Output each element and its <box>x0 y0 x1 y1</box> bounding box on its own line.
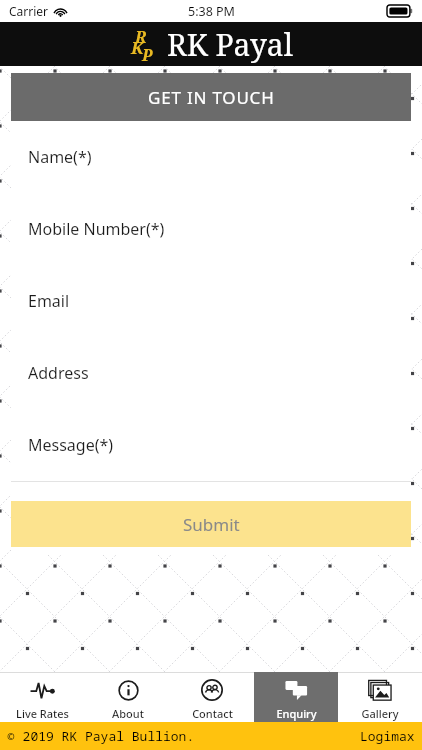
button[interactable]: Mobile Number(*) <box>11 193 411 265</box>
button[interactable]: Enquiry <box>254 672 338 722</box>
button[interactable]: Contact <box>170 672 254 722</box>
staticText: Carrier <box>9 3 49 19</box>
staticText: Message(*) <box>28 434 114 456</box>
staticText: About <box>112 706 144 721</box>
button[interactable]: Live Rates <box>0 672 85 722</box>
staticText: Enquiry <box>276 706 317 721</box>
staticText: Name(*) <box>28 146 92 168</box>
other: Gallery <box>368 680 392 701</box>
button[interactable]: Gallery <box>338 672 422 722</box>
staticText: R <box>135 26 147 48</box>
button[interactable]: About <box>85 672 170 722</box>
button[interactable]: GET IN TOUCH <box>11 73 411 121</box>
staticText: Logimax <box>360 727 415 745</box>
staticText: Contact <box>192 706 233 721</box>
staticText: 5:38 PM <box>188 3 235 20</box>
button[interactable]: Address <box>11 337 411 409</box>
staticText: Submit <box>183 513 240 536</box>
other: Live Rates <box>30 680 56 700</box>
button[interactable]: Message(*) <box>11 409 411 481</box>
staticText: K <box>131 36 144 59</box>
button[interactable]: Name(*) <box>11 121 411 193</box>
staticText: Address <box>28 362 89 384</box>
staticText: Mobile Number(*) <box>28 218 165 240</box>
staticText: GET IN TOUCH <box>148 86 275 109</box>
staticText: RK Payal <box>167 24 294 65</box>
other: About <box>118 680 139 701</box>
other: Enquiry <box>285 680 308 700</box>
staticText: P <box>142 44 153 66</box>
button[interactable]: Email <box>11 265 411 337</box>
staticText: Email <box>28 290 70 312</box>
staticText: © 2019 RK Payal Bullion. <box>7 727 195 745</box>
other: Contact <box>201 679 223 701</box>
staticText: Live Rates <box>16 706 69 721</box>
staticText: Gallery <box>361 706 399 721</box>
button[interactable]: Submit <box>11 501 411 547</box>
